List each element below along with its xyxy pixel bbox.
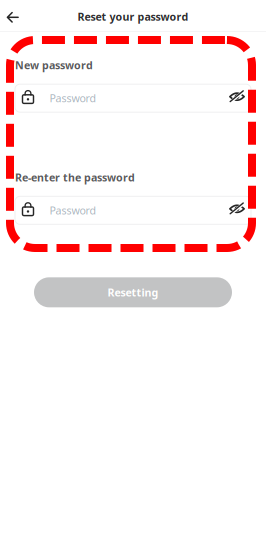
button[interactable]: Show password [229, 84, 251, 112]
staticText: Reset your password [77, 9, 188, 24]
staticText: Password [49, 203, 96, 217]
staticText: Password [49, 91, 96, 105]
button[interactable]: Back [0, 1, 27, 30]
button[interactable]: Show password [229, 196, 251, 224]
button[interactable]: Resetting [34, 277, 232, 307]
staticText: New password [15, 58, 93, 72]
staticText: Re-enter the password [15, 170, 135, 184]
staticText: Resetting [107, 285, 158, 299]
